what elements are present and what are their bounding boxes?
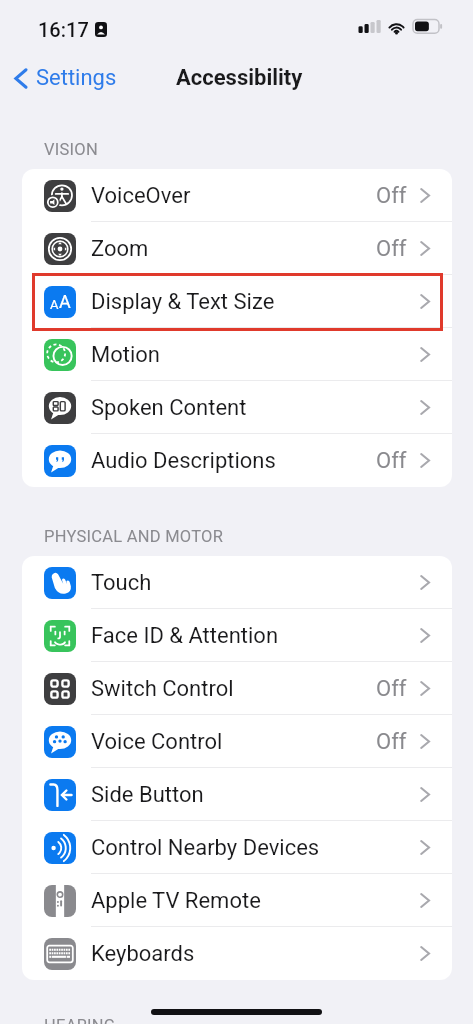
staticText: Off <box>376 236 407 262</box>
staticText: A <box>50 297 59 312</box>
staticText: Accessibility <box>176 65 303 91</box>
staticText: Off <box>376 448 407 474</box>
staticText: Side Button <box>91 782 204 808</box>
staticText: Settings <box>36 65 117 91</box>
staticText: Face ID & Attention <box>91 623 279 649</box>
staticText: Touch <box>91 570 152 596</box>
staticText: Keyboards <box>91 941 195 967</box>
staticText: Spoken Content <box>91 395 247 421</box>
staticText: A <box>59 291 71 312</box>
button[interactable]: VoiceOver <box>22 169 452 222</box>
button[interactable]: Spoken Content <box>22 381 452 434</box>
staticText: Apple TV Remote <box>91 888 261 914</box>
staticText: Off <box>376 183 407 209</box>
button[interactable]: Control Nearby Devices <box>22 821 452 874</box>
button[interactable]: Motion <box>22 328 452 381</box>
staticText: VISION <box>44 140 98 159</box>
staticText: Off <box>376 676 407 702</box>
staticText: PHYSICAL AND MOTOR <box>44 527 224 546</box>
staticText: Audio Descriptions <box>91 448 276 474</box>
button[interactable]: Apple TV Remote <box>22 874 452 927</box>
staticText: Motion <box>91 342 160 368</box>
button[interactable]: Zoom <box>22 222 452 275</box>
staticText: VoiceOver <box>91 183 191 209</box>
staticText: Display & Text Size <box>91 289 275 315</box>
button[interactable]: Voice Control <box>22 715 452 768</box>
staticText: Control Nearby Devices <box>91 835 320 861</box>
staticText: HEARING <box>44 1016 116 1024</box>
button[interactable]: Switch Control <box>22 662 452 715</box>
button[interactable]: Audio Descriptions <box>22 434 452 487</box>
button[interactable]: Keyboards <box>22 927 452 980</box>
staticText: Zoom <box>91 236 149 262</box>
staticText: Switch Control <box>91 676 234 702</box>
button[interactable]: Settings <box>9 60 123 96</box>
staticText: 16:17 <box>38 18 89 41</box>
staticText: Off <box>376 729 407 755</box>
button[interactable]: Side Button <box>22 768 452 821</box>
button[interactable]: Face ID & Attention <box>22 609 452 662</box>
staticText: Voice Control <box>91 729 223 755</box>
button[interactable]: A <box>22 275 452 328</box>
button[interactable]: Touch <box>22 556 452 609</box>
